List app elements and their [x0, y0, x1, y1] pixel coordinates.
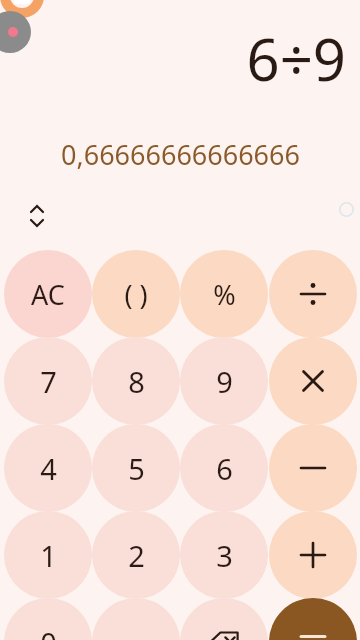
button[interactable]: 0 — [4, 598, 92, 640]
staticText: 2 — [128, 536, 145, 575]
staticText: 8 — [128, 362, 145, 401]
button[interactable]: Equals — [269, 598, 357, 640]
button[interactable]: AC — [4, 250, 92, 338]
button[interactable] — [269, 424, 357, 512]
staticText: 6÷9 — [246, 19, 346, 98]
staticText: % — [213, 276, 236, 313]
button[interactable]: 8 — [92, 337, 180, 425]
staticText: 1 — [40, 536, 57, 575]
staticText: 0,66666666666666 — [61, 136, 300, 173]
button[interactable]: 9 — [180, 337, 268, 425]
button[interactable]: 5 — [92, 424, 180, 512]
button[interactable]: 4 — [4, 424, 92, 512]
staticText: ( ) — [124, 276, 148, 313]
staticText: 0 — [40, 623, 57, 640]
button[interactable]: 1 — [4, 511, 92, 599]
button[interactable]: ( ) — [92, 250, 180, 338]
button[interactable]: 3 — [180, 511, 268, 599]
button[interactable] — [269, 250, 357, 338]
staticText: AC — [31, 276, 65, 313]
staticText: 3 — [216, 536, 233, 575]
button[interactable]: 2 — [92, 511, 180, 599]
button[interactable]: 7 — [4, 337, 92, 425]
button[interactable]: , — [92, 598, 180, 640]
staticText: 5 — [128, 449, 145, 488]
button[interactable]: History — [339, 202, 354, 217]
staticText: 9 — [216, 362, 233, 401]
button[interactable]: Backspace — [180, 598, 268, 640]
staticText: 7 — [40, 362, 57, 401]
staticText: 6 — [216, 449, 233, 488]
button[interactable]: 6 — [180, 424, 268, 512]
staticText: 4 — [40, 449, 57, 488]
button[interactable] — [269, 337, 357, 425]
button[interactable]: Expand result — [22, 198, 52, 228]
button[interactable]: % — [180, 250, 268, 338]
button[interactable] — [269, 511, 357, 599]
